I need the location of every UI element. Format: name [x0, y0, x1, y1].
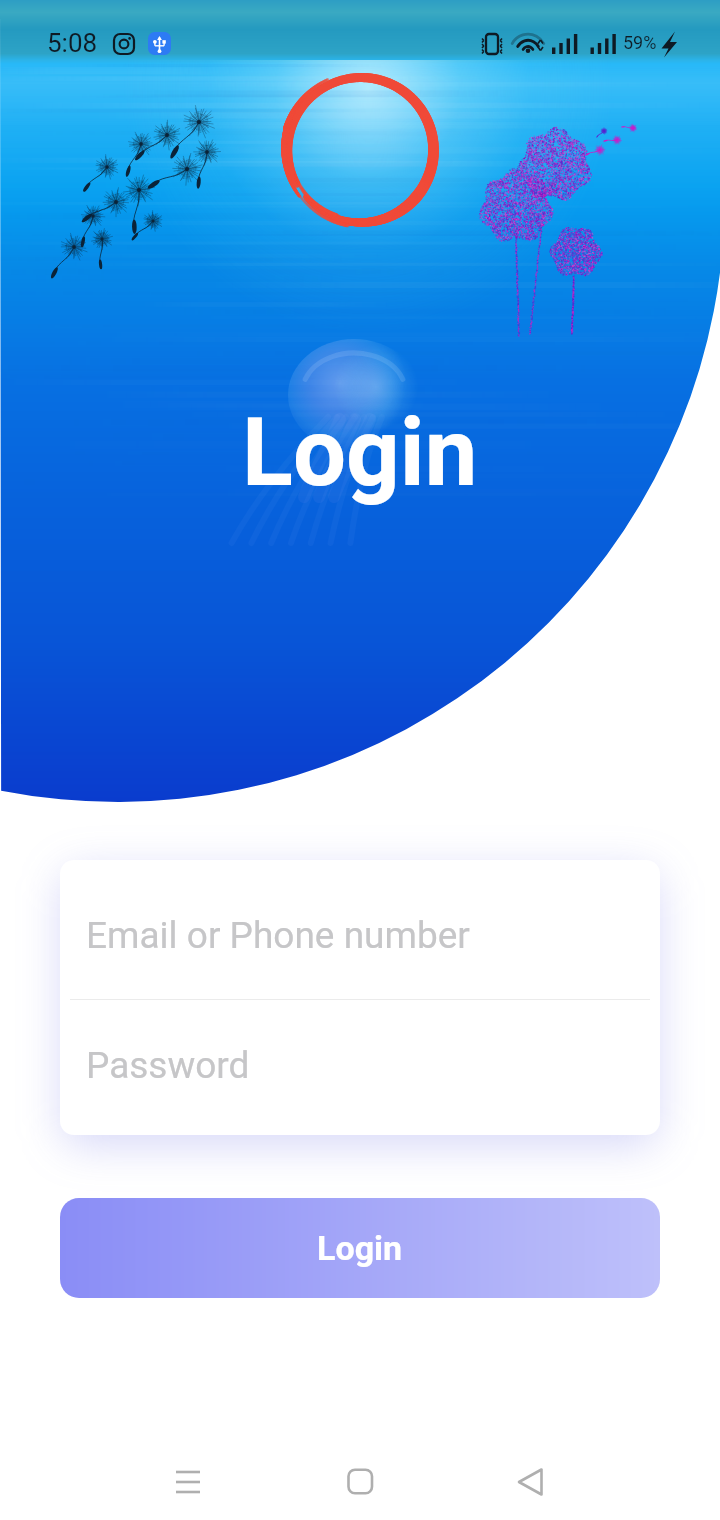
staticText: Password	[86, 1044, 250, 1087]
button[interactable]: Email or Phone number	[60, 860, 660, 999]
button[interactable]: Recents	[148, 1446, 228, 1520]
button[interactable]: Password	[60, 1000, 660, 1134]
button[interactable]: Home	[320, 1446, 400, 1520]
button[interactable]: Back	[490, 1446, 570, 1520]
staticText: Login	[317, 1228, 403, 1268]
button[interactable]: Login	[60, 1198, 660, 1298]
staticText: Email or Phone number	[86, 914, 470, 957]
staticText: 5:08	[47, 28, 98, 58]
staticText: Login	[242, 398, 478, 508]
staticText: 59%	[623, 32, 657, 53]
